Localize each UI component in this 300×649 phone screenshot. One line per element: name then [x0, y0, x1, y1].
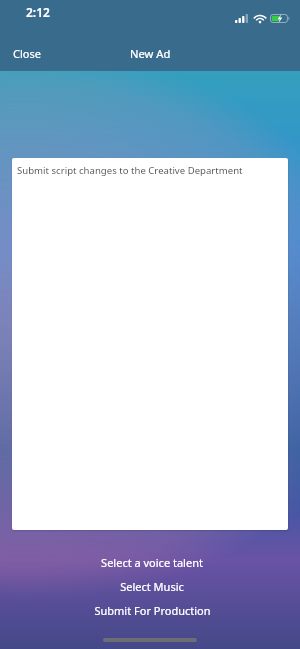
button[interactable]: Select Music — [0, 574, 300, 598]
staticText: Close — [13, 46, 41, 61]
staticText: Submit script changes to the Creative De… — [17, 164, 243, 177]
button[interactable]: Submit script changes to the Creative De… — [12, 158, 288, 530]
staticText: Submit For Production — [94, 603, 211, 618]
button[interactable]: Select a voice talent — [0, 550, 300, 574]
staticText: 2:12 — [26, 4, 50, 20]
button[interactable]: Submit For Production — [0, 598, 300, 622]
staticText: Select a voice talent — [101, 555, 203, 570]
button[interactable]: Close — [0, 38, 54, 69]
staticText: New Ad — [130, 46, 171, 61]
staticText: Select Music — [120, 579, 184, 594]
